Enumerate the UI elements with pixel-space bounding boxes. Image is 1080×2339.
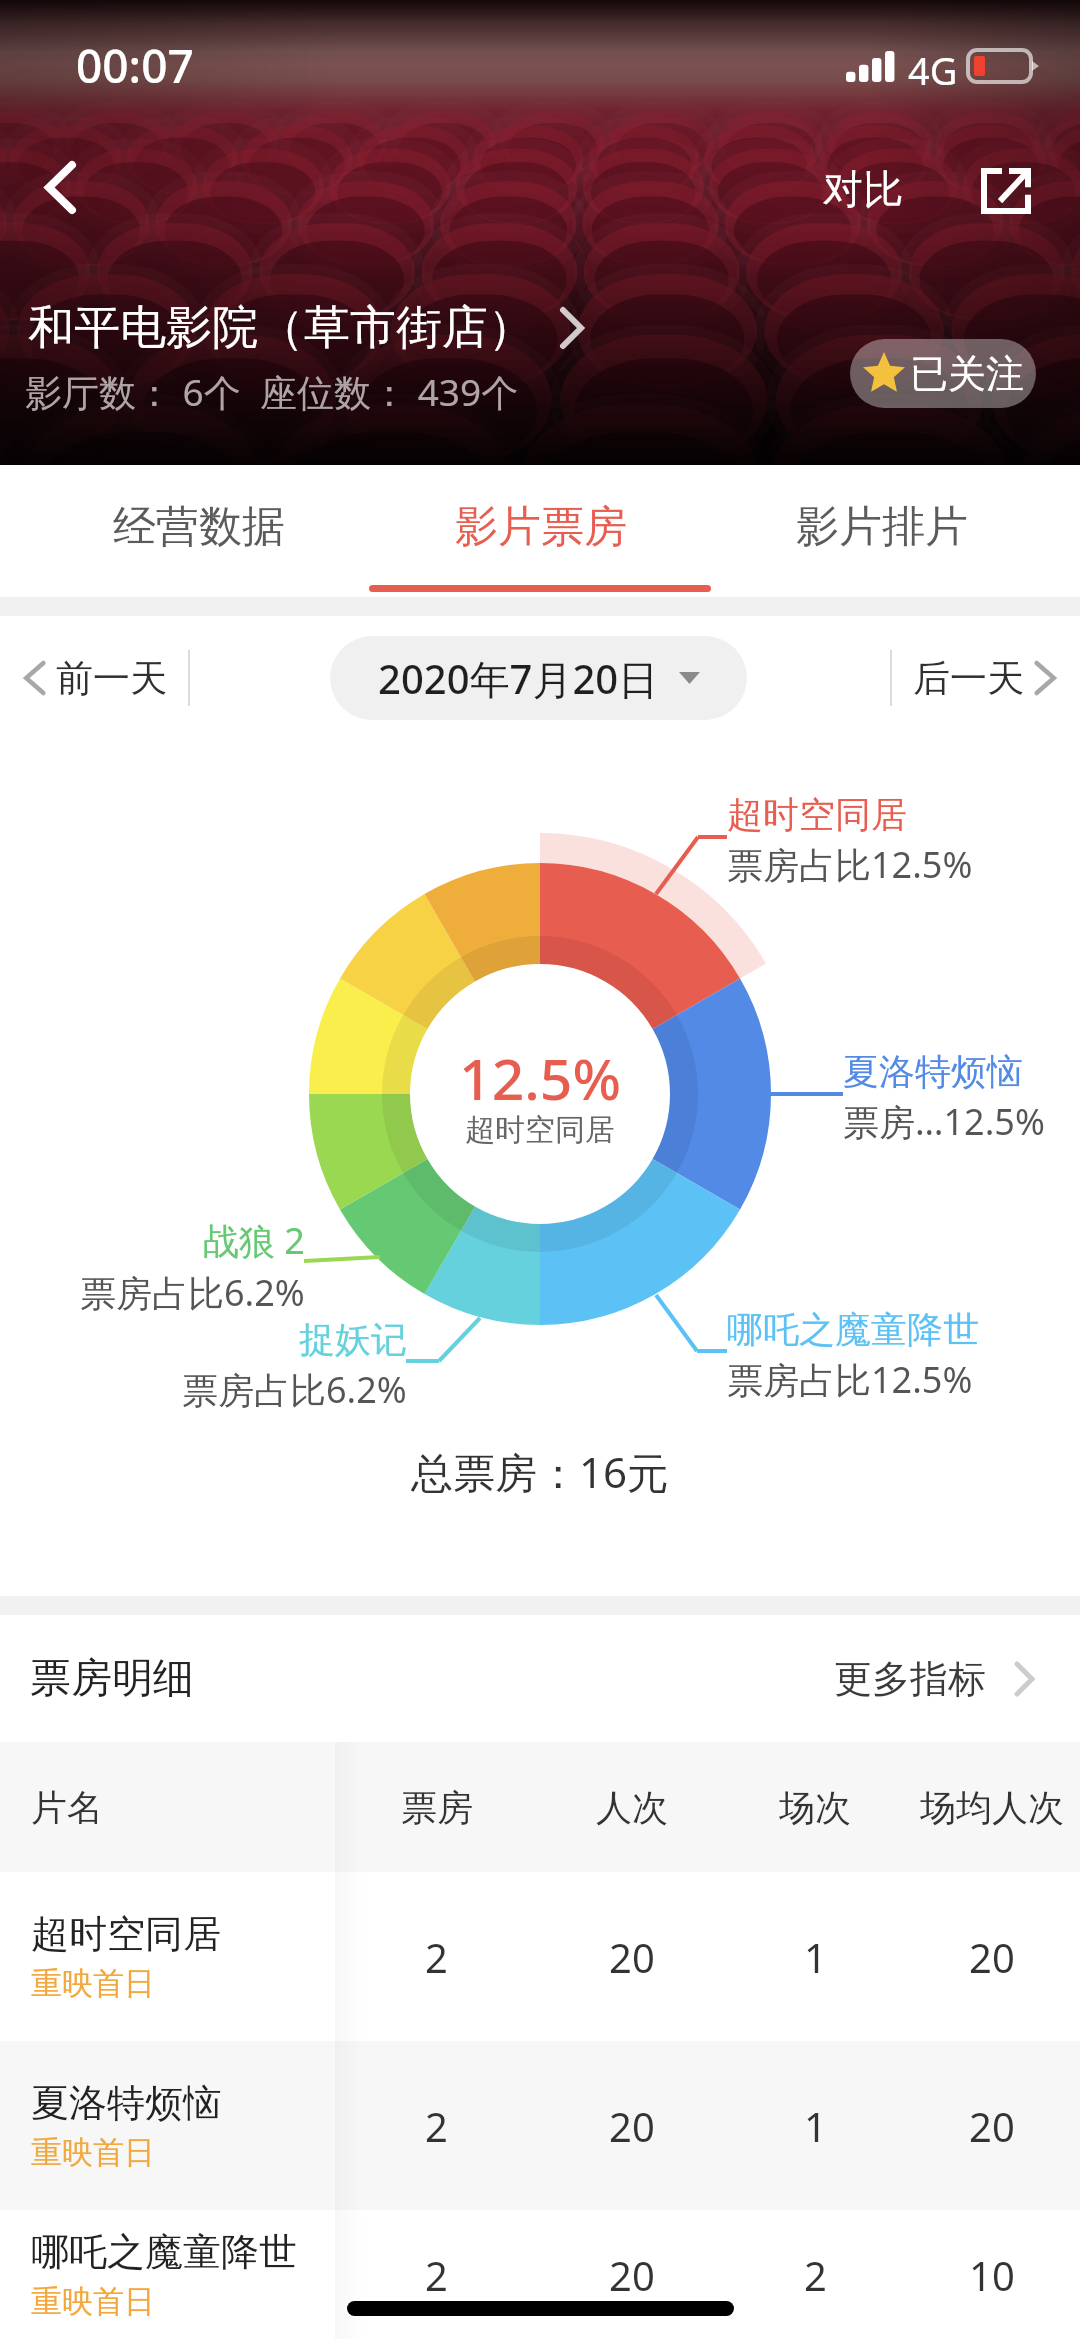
staticText: 票房明细 [30, 1653, 194, 1705]
staticText: 人次 [596, 1785, 668, 1830]
staticText: 影片票房 [455, 500, 627, 554]
button[interactable]: 夏洛特烦恼 [0, 2041, 1080, 2210]
staticText: 捉妖记 [299, 1317, 407, 1362]
button[interactable]: 哪吒之魔童降世 [0, 2210, 1080, 2339]
staticText: 12.5% [0, 1039, 1080, 1117]
button[interactable]: 对比 [805, 150, 921, 228]
staticText: 超时空同居 [0, 1111, 1080, 1149]
staticText: 战狼 2 [203, 1216, 305, 1265]
staticText: 夏洛特烦恼 [31, 2079, 221, 2127]
staticText: 更多指标 [834, 1655, 986, 1703]
staticText: 已关注 [910, 350, 1024, 398]
staticText: 哪吒之魔童降世 [727, 1307, 979, 1352]
staticText: 1 [804, 1930, 827, 1984]
staticText: 20 [969, 2099, 1015, 2153]
staticText: 场次 [779, 1785, 851, 1830]
button[interactable]: 票房明细 [0, 1615, 1080, 1742]
staticText: 2 [804, 2248, 827, 2302]
staticText: 重映首日 [31, 2133, 155, 2172]
staticText: 10 [969, 2248, 1015, 2302]
staticText: 夏洛特烦恼 [843, 1049, 1023, 1094]
staticText: 票房占比6.2% [80, 1268, 305, 1317]
staticText: 20 [609, 2248, 655, 2302]
button[interactable]: 超时空同居 [0, 1872, 1080, 2041]
button[interactable]: 影片排片 [711, 465, 1052, 597]
staticText: 20 [609, 1930, 655, 1984]
button[interactable]: 前一天 [0, 616, 188, 740]
staticText: 2020年7月20日 [378, 651, 659, 706]
staticText: 2 [425, 1930, 448, 1984]
button[interactable]: 2020年7月20日 [330, 636, 747, 720]
staticText: 20 [609, 2099, 655, 2153]
staticText: 超时空同居 [727, 792, 907, 837]
staticText: 票房 [401, 1785, 473, 1830]
staticText: 对比 [823, 164, 903, 214]
staticText: 影片排片 [796, 500, 968, 554]
staticText: 票房…12.5% [843, 1097, 1045, 1146]
button[interactable]: Share [960, 145, 1052, 237]
staticText: 重映首日 [31, 2282, 155, 2321]
staticText: 后一天 [913, 655, 1024, 702]
staticText: 票房占比6.2% [182, 1365, 407, 1414]
button[interactable]: 后一天 [892, 616, 1080, 740]
button[interactable]: 经营数据 [28, 465, 370, 597]
staticText: 哪吒之魔童降世 [31, 2228, 297, 2276]
button[interactable]: 已关注 [850, 339, 1036, 408]
staticText: 场均人次 [920, 1785, 1064, 1830]
staticText: 4G [908, 44, 958, 96]
staticText: 经营数据 [113, 500, 285, 554]
staticText: 和平电影院（草市街店） [28, 299, 534, 357]
staticText: 票房占比12.5% [727, 840, 973, 889]
staticText: 20 [969, 1930, 1015, 1984]
staticText: 前一天 [56, 655, 167, 702]
staticText: 票房占比12.5% [727, 1355, 973, 1404]
staticText: 00:07 [76, 34, 194, 97]
staticText: 2 [425, 2248, 448, 2302]
staticText: 重映首日 [31, 1964, 155, 2003]
staticText: 片名 [31, 1785, 103, 1830]
button[interactable]: 影片票房 [370, 465, 711, 597]
staticText: 超时空同居 [31, 1910, 221, 1958]
staticText: 影厅数： 6个 座位数： 439个 [25, 366, 519, 417]
staticText: 1 [804, 2099, 827, 2153]
staticText: 2 [425, 2099, 448, 2153]
staticText: 总票房：16元 [0, 1443, 1080, 1500]
button[interactable]: Back [18, 145, 102, 229]
